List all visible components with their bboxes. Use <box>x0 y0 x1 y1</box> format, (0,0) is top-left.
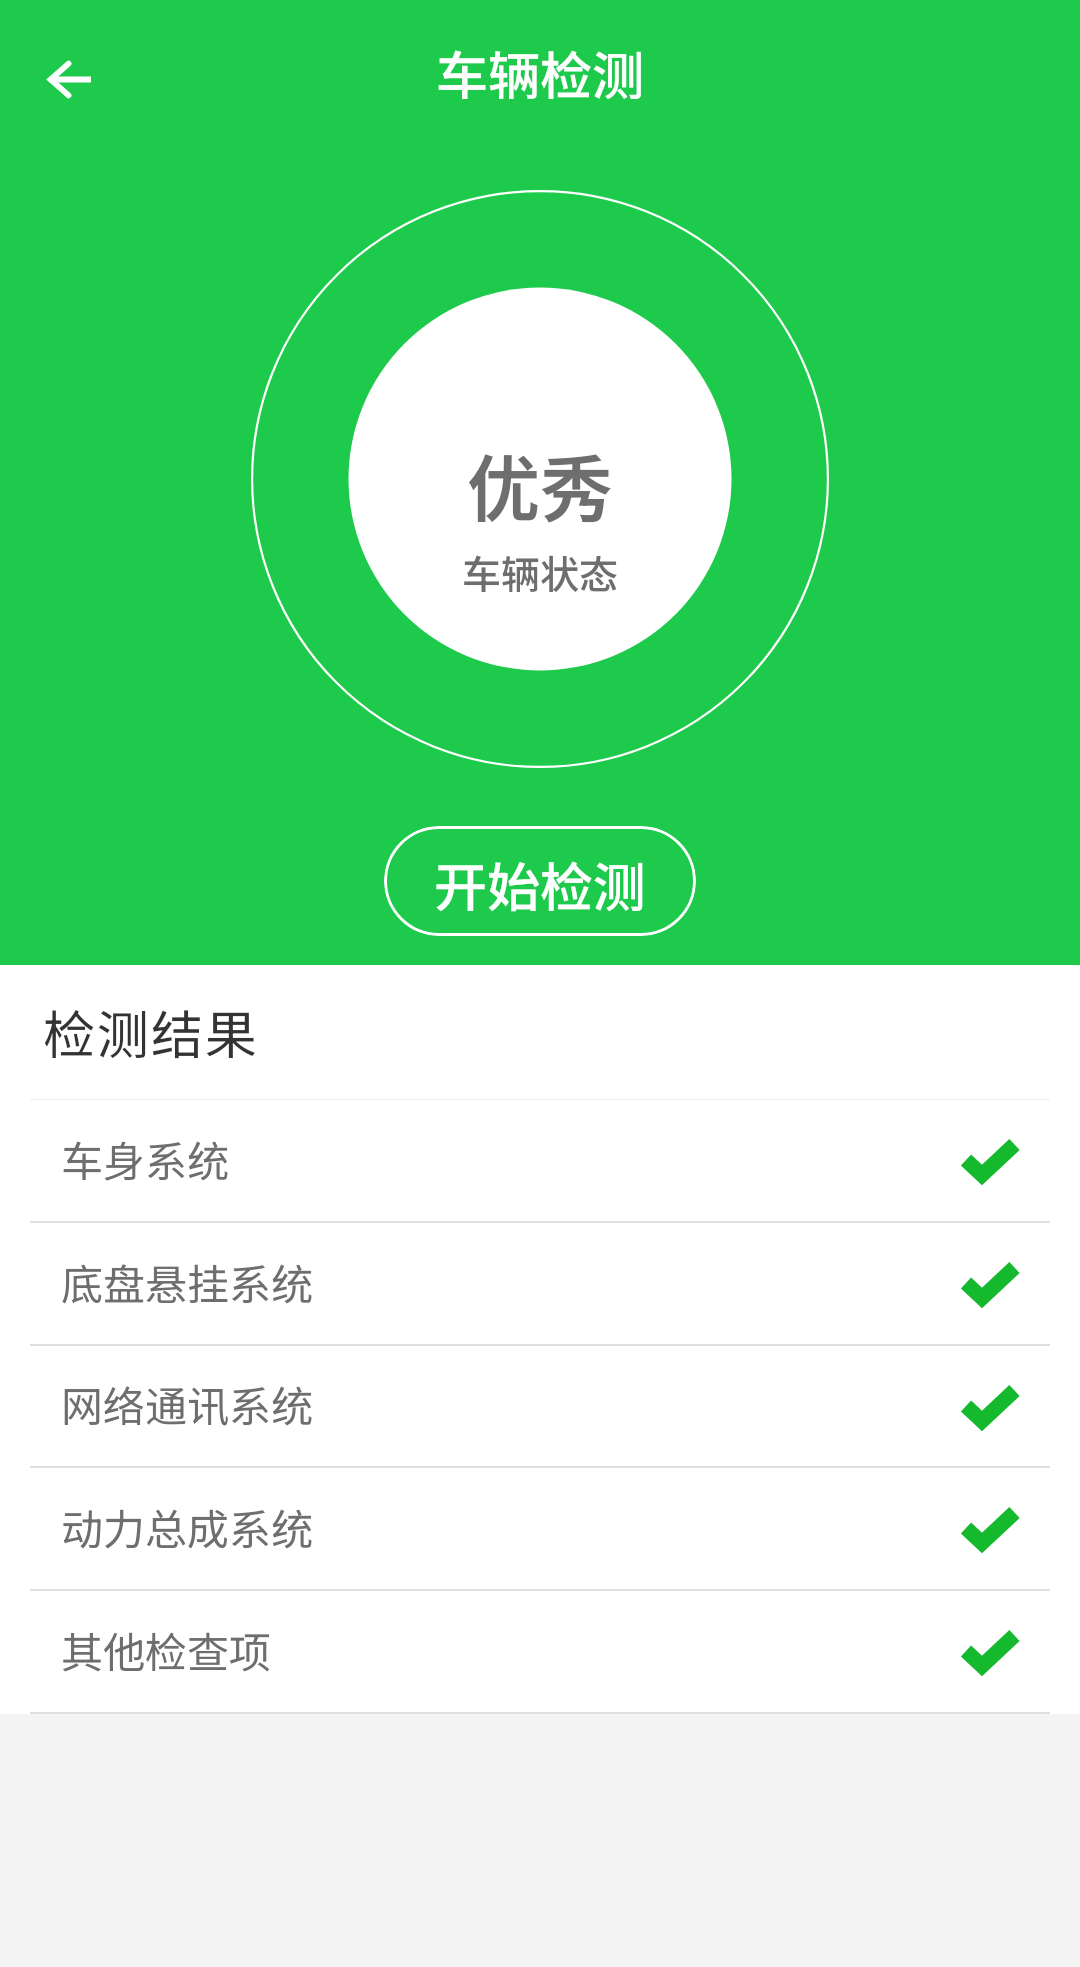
button[interactable]: 车身系统 <box>0 1100 1080 1221</box>
button[interactable]: 其他检查项 <box>0 1591 1080 1712</box>
button[interactable]: 网络通讯系统 <box>0 1346 1080 1466</box>
button[interactable]: 动力总成系统 <box>0 1468 1080 1589</box>
staticText: 动力总成系统 <box>61 1496 314 1557</box>
staticText: 车辆状态 <box>462 544 619 600</box>
button[interactable]: 底盘悬挂系统 <box>0 1223 1080 1344</box>
staticText: 车身系统 <box>61 1128 230 1189</box>
staticText: 网络通讯系统 <box>61 1373 314 1434</box>
staticText: 底盘悬挂系统 <box>61 1251 314 1312</box>
button[interactable]: 开始检测 <box>384 826 696 936</box>
staticText: 检测结果 <box>43 994 260 1069</box>
staticText: 车辆检测 <box>436 35 645 110</box>
button[interactable]: Back <box>21 31 117 127</box>
staticText: 开始检测 <box>434 846 646 923</box>
staticText: 其他检查项 <box>61 1619 272 1680</box>
staticText: 优秀 <box>467 431 613 537</box>
